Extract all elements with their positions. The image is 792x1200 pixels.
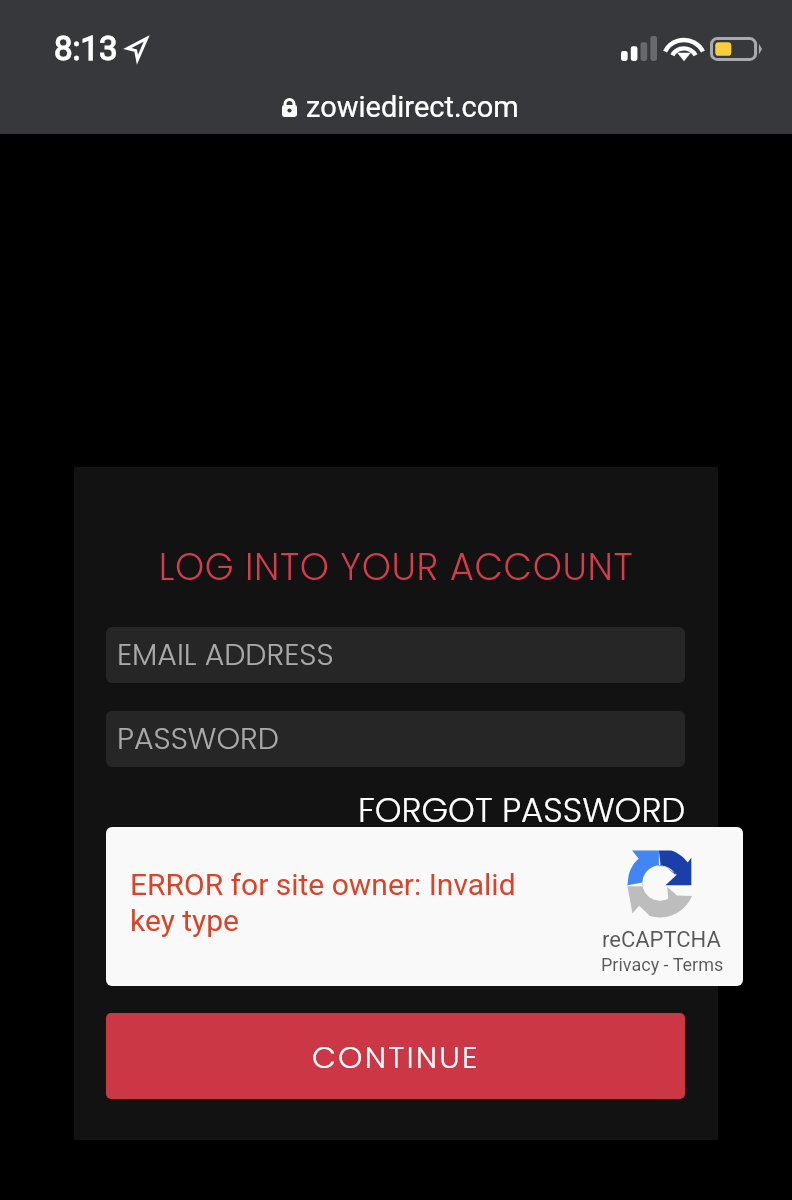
staticText: zowiedirect.com bbox=[306, 90, 519, 124]
staticText: LOG INTO YOUR ACCOUNT bbox=[106, 541, 686, 593]
staticText: CONTINUE bbox=[312, 1035, 480, 1078]
staticText: reCAPTCHA bbox=[602, 927, 721, 953]
button[interactable]: PASSWORD bbox=[106, 711, 685, 767]
button[interactable]: ERROR for site owner: Invalid key type bbox=[106, 827, 743, 986]
button[interactable]: CONTINUE bbox=[106, 1013, 685, 1099]
staticText: EMAIL ADDRESS bbox=[117, 634, 334, 676]
staticText: PASSWORD bbox=[117, 718, 279, 760]
other: Wi-Fi bbox=[668, 36, 700, 61]
staticText: Privacy - Terms bbox=[601, 954, 724, 975]
button[interactable]: FORGOT PASSWORD bbox=[358, 786, 686, 834]
button[interactable]: EMAIL ADDRESS bbox=[106, 627, 685, 683]
other: Location bbox=[126, 37, 148, 61]
button[interactable]: zowiedirect.com bbox=[9, 80, 792, 134]
other: reCAPTCHA bbox=[618, 841, 702, 925]
other: Cellular signal bbox=[621, 36, 657, 61]
other: Battery bbox=[710, 37, 762, 61]
staticText: 8:13 bbox=[54, 29, 118, 68]
staticText: ERROR for site owner: Invalid key type bbox=[130, 867, 530, 938]
